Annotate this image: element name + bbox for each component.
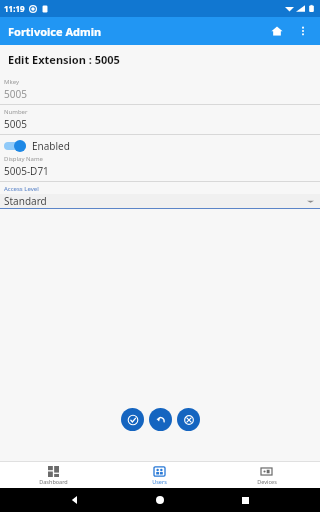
staticText: Dashboard [39, 478, 68, 485]
button[interactable]: Users [106, 466, 213, 485]
button[interactable]: Display Name [0, 155, 320, 185]
staticText: Enabled [32, 139, 70, 153]
staticText: Display Name [4, 155, 43, 163]
button[interactable]: Save [121, 408, 144, 431]
button[interactable]: Back [65, 490, 85, 510]
staticText: 5005 [4, 117, 27, 131]
button[interactable]: Dashboard [0, 466, 106, 485]
staticText: Number [4, 108, 28, 116]
staticText: 5005 [4, 87, 27, 101]
staticText: Users [152, 478, 167, 485]
button[interactable]: Home [150, 490, 170, 510]
staticText: Access Level [4, 185, 39, 193]
button[interactable]: Undo [149, 408, 172, 431]
button[interactable]: Devices [213, 466, 320, 485]
staticText: Mkey [4, 78, 19, 86]
button[interactable]: Cancel [177, 408, 200, 431]
button[interactable]: Home [264, 18, 290, 44]
button[interactable]: Enabled [4, 139, 320, 153]
button[interactable]: More options [290, 18, 316, 44]
button[interactable]: Access Level [0, 185, 320, 209]
staticText: Standard [4, 194, 47, 208]
staticText: Edit Extension : 5005 [8, 52, 120, 67]
button[interactable]: Recents [235, 490, 255, 510]
staticText: 5005-D71 [4, 164, 49, 178]
staticText: Fortivoice Admin [8, 24, 102, 39]
staticText: 11:19 [4, 3, 25, 14]
button[interactable]: Mkey [0, 78, 320, 108]
staticText: Devices [257, 478, 277, 485]
button[interactable]: Number [0, 108, 320, 138]
